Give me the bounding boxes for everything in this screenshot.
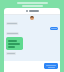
button[interactable]: [6, 52, 16, 55]
button[interactable]: [50, 27, 58, 30]
button[interactable]: Profile: [4, 10, 60, 12]
button[interactable]: [6, 32, 19, 35]
button[interactable]: Contact avatar: [30, 16, 34, 20]
button[interactable]: [6, 37, 23, 50]
button[interactable]: [6, 22, 18, 25]
button[interactable]: [44, 63, 58, 69]
